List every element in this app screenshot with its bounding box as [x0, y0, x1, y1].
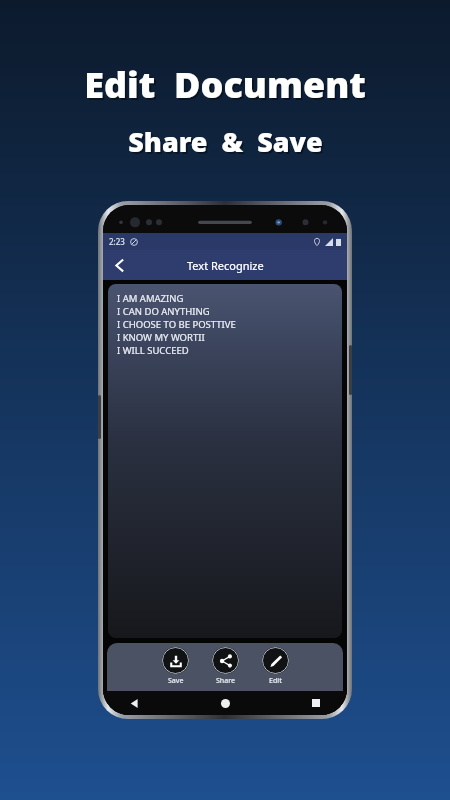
staticText: Share & Save: [130, 125, 325, 162]
button[interactable]: Save: [160, 647, 191, 686]
button[interactable]: Back: [106, 252, 132, 278]
staticText: Edit Document: [86, 62, 368, 111]
staticText: Save: [168, 676, 184, 686]
button[interactable]: Share: [210, 647, 241, 686]
staticText: I CAN DO ANYTHING: [117, 305, 210, 318]
staticText: I WILL SUCCEED: [117, 344, 189, 357]
staticText: I CHOOSE TO BE POSTTIVE: [117, 318, 236, 331]
staticText: Share: [216, 676, 236, 686]
staticText: 2:23: [109, 236, 125, 247]
button[interactable]: Home: [214, 692, 236, 714]
staticText: Edit: [269, 676, 282, 686]
staticText: Share & Save: [128, 123, 323, 160]
staticText: I KNOW MY WORTII: [117, 331, 205, 344]
staticText: I AM AMAZING: [117, 292, 184, 305]
button[interactable]: Recent apps: [305, 692, 327, 714]
button[interactable]: Edit: [260, 647, 291, 686]
staticText: Text Recognize: [187, 258, 264, 273]
staticText: Edit Document: [84, 60, 366, 109]
button[interactable]: Back: [123, 692, 145, 714]
